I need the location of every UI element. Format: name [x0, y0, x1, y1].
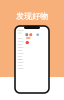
- staticText: 发现好物: [16, 11, 48, 21]
